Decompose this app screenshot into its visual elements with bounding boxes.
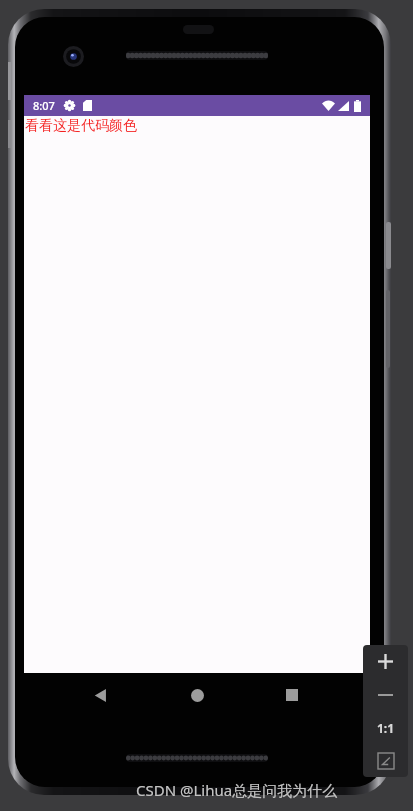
staticText: CSDN @Lihua总是问我为什么 [136,780,338,800]
button[interactable]: Fit to screen [363,744,408,777]
staticText: 8:07 [33,98,55,113]
button[interactable]: Zoom out [363,678,408,711]
button[interactable]: Back [64,673,136,717]
staticText: 看看这是代码颜色 [25,117,137,135]
button[interactable]: 1:1 [363,711,408,744]
button[interactable]: Home [161,673,233,717]
button[interactable]: Recent apps [256,673,328,717]
button[interactable]: Zoom in [363,645,408,678]
staticText: 1:1 [377,720,395,736]
